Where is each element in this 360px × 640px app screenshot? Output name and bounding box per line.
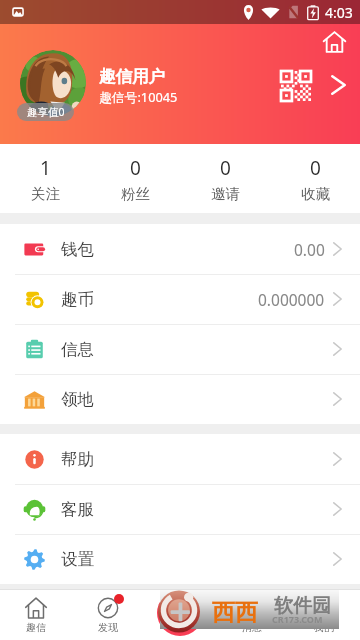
staticText: 趣享值0 (27, 105, 65, 119)
staticText: 0 (220, 155, 231, 181)
button[interactable]: Post (157, 590, 203, 636)
button[interactable]: 发现 (72, 589, 144, 640)
staticText: 0.000000 (258, 289, 325, 310)
staticText: 设置 (61, 549, 94, 570)
button[interactable]: 趣币 (0, 274, 360, 324)
staticText: 邀请 (211, 185, 240, 203)
staticText: 4:03 (325, 3, 353, 22)
staticText: 收藏 (301, 185, 330, 203)
staticText: 帮助 (61, 449, 94, 470)
button[interactable]: 趣信 (0, 589, 72, 640)
button[interactable]: 客服 (0, 484, 360, 534)
staticText: 客服 (61, 499, 94, 520)
button[interactable]: Home (323, 31, 346, 53)
staticText: 信息 (61, 339, 94, 360)
staticText: 领地 (61, 389, 94, 410)
button[interactable]: 钱包 (0, 224, 360, 274)
staticText: 1 (40, 155, 51, 181)
staticText: 0 (130, 155, 141, 181)
button[interactable]: 0 (180, 144, 270, 213)
staticText: 趣信用户 (99, 66, 165, 87)
button[interactable]: 帮助 (0, 434, 360, 484)
button[interactable]: 0 (270, 144, 360, 213)
staticText: 我的 (314, 621, 334, 634)
button[interactable]: QR code (281, 71, 311, 101)
button[interactable]: 0 (90, 144, 180, 213)
button[interactable]: 信息 (0, 324, 360, 374)
button[interactable]: 1 (0, 144, 90, 213)
staticText: 关注 (31, 185, 60, 203)
staticText: 0 (310, 155, 321, 181)
staticText: 趣信号:10045 (99, 88, 178, 105)
button[interactable]: 消息 (216, 589, 288, 640)
staticText: 发现 (98, 621, 118, 634)
button[interactable]: 领地 (0, 374, 360, 424)
staticText: 趣信 (26, 621, 46, 634)
staticText: 消息 (242, 621, 262, 634)
staticText: 趣币 (61, 289, 94, 310)
staticText: 西西 (212, 598, 258, 627)
staticText: 0.00 (294, 239, 325, 260)
staticText: 粉丝 (121, 185, 150, 203)
button[interactable]: 设置 (0, 534, 360, 584)
staticText: CR173.COM (272, 613, 323, 625)
button[interactable]: 我的 (288, 589, 360, 640)
staticText: 软件园 (274, 594, 331, 618)
staticText: 钱包 (61, 239, 94, 260)
